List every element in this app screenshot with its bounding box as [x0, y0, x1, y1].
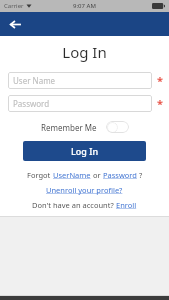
button[interactable]: Unenroll your profile?: [46, 185, 123, 195]
staticText: ?: [137, 170, 143, 180]
staticText: Don't have an account?: [32, 200, 116, 210]
staticText: Carrier: [4, 2, 24, 10]
button[interactable]: Password: [8, 95, 152, 112]
button[interactable]: Password: [103, 170, 137, 180]
button[interactable]: Enroll: [116, 200, 137, 210]
staticText: User Name: [13, 75, 56, 86]
button[interactable]: Don't have an account?: [32, 200, 137, 210]
staticText: Log In: [71, 145, 99, 157]
button[interactable]: Remember Me toggle: [106, 121, 129, 133]
button[interactable]: Forgot: [27, 170, 143, 180]
staticText: Log In: [0, 42, 169, 62]
staticText: or: [91, 170, 103, 180]
button[interactable]: UserName: [53, 170, 91, 180]
staticText: *: [157, 96, 163, 111]
button[interactable]: User Name: [8, 72, 152, 89]
button[interactable]: Log In: [23, 141, 146, 161]
staticText: Forgot: [27, 170, 53, 180]
button[interactable]: Back: [5, 14, 25, 34]
staticText: Password: [13, 98, 50, 109]
staticText: Remember Me: [41, 122, 97, 133]
staticText: 9:07 AM: [73, 2, 96, 10]
staticText: *: [157, 73, 163, 88]
